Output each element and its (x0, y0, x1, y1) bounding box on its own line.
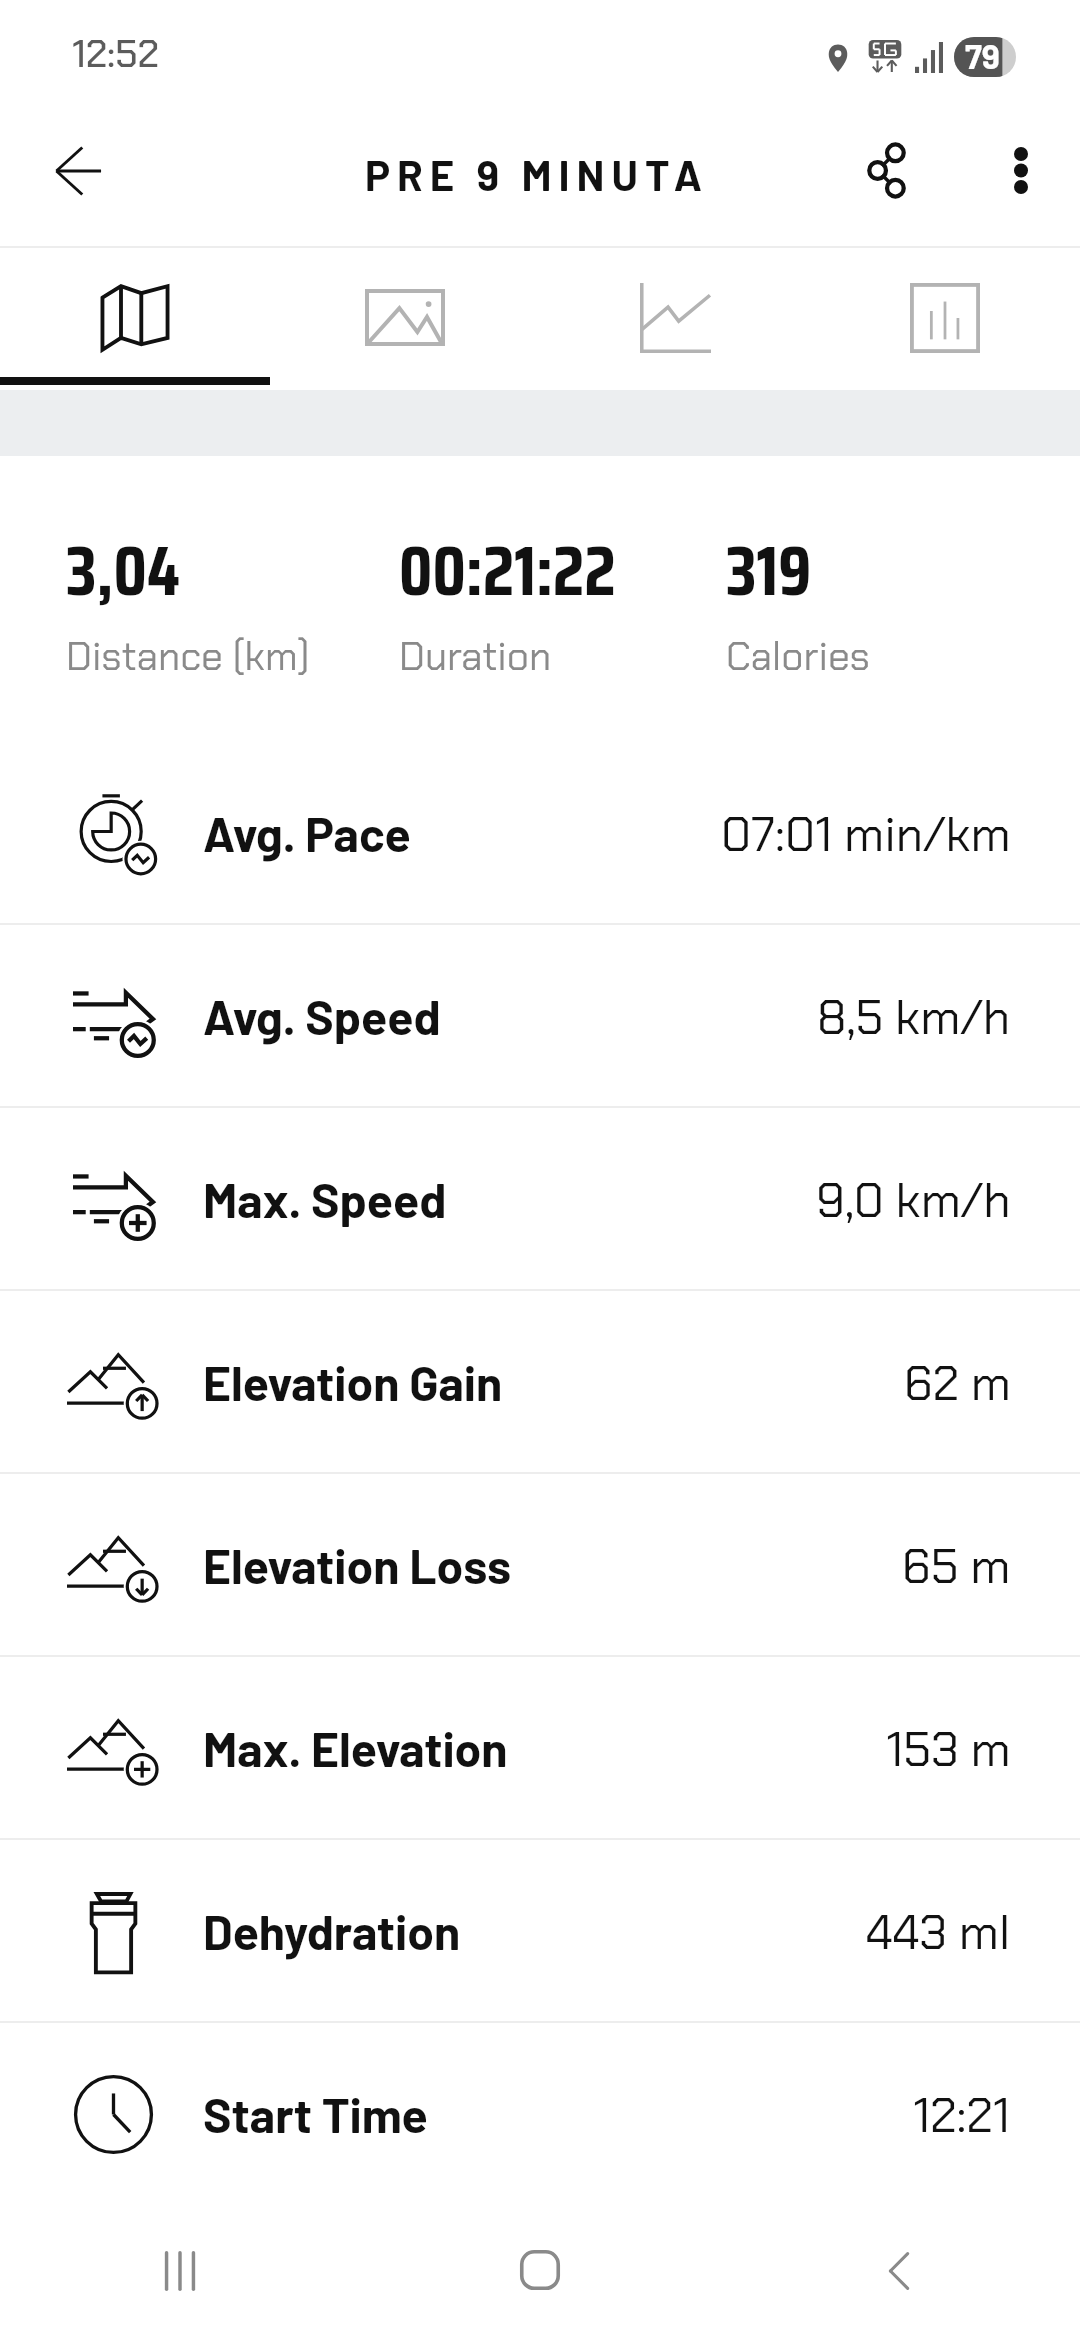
button[interactable]: Stats (810, 248, 1080, 385)
staticText: Avg. Pace (203, 804, 411, 862)
staticText: 07:01 min/km (721, 803, 1011, 865)
button[interactable]: Avg. Pace (0, 742, 1080, 925)
staticText: Avg. Speed (203, 987, 441, 1045)
staticText: 79 (965, 37, 1000, 75)
staticText: Elevation Gain (203, 1353, 503, 1411)
button[interactable]: Max. Speed (0, 1108, 1080, 1291)
staticText: Duration (399, 631, 552, 682)
staticText: 65 m (902, 1535, 1011, 1597)
button[interactable]: Elevation Gain (0, 1291, 1080, 1474)
staticText: 3,04 (66, 516, 180, 626)
staticText: 319 (726, 516, 812, 626)
staticText: Start Time (203, 2085, 428, 2143)
staticText: 153 m (886, 1718, 1011, 1780)
staticText: 62 m (904, 1352, 1011, 1414)
button[interactable]: More options (969, 118, 1073, 222)
button[interactable]: Back (720, 2206, 1080, 2340)
staticText: Elevation Loss (203, 1536, 512, 1594)
button[interactable]: Map (0, 248, 270, 385)
staticText: Max. Speed (203, 1170, 447, 1228)
staticText: 12:52 (72, 29, 159, 78)
staticText: Distance (km) (66, 631, 310, 682)
staticText: Max. Elevation (203, 1719, 508, 1777)
staticText: 443 ml (866, 1901, 1011, 1963)
button[interactable]: Share (834, 118, 938, 222)
button[interactable]: Graph (540, 248, 810, 385)
staticText: Dehydration (203, 1902, 461, 1960)
staticText: 12:21 (913, 2084, 1011, 2146)
button[interactable]: Max. Elevation (0, 1657, 1080, 1840)
button[interactable]: Home (360, 2206, 720, 2340)
staticText: PRE 9 MINUTA (365, 149, 709, 199)
button[interactable]: Back (26, 119, 130, 223)
staticText: Calories (726, 631, 870, 682)
button[interactable]: Avg. Speed (0, 925, 1080, 1108)
button[interactable]: Recents (0, 2206, 360, 2340)
button[interactable]: Start Time (0, 2023, 1080, 2206)
staticText: 9,0 km/h (816, 1169, 1011, 1231)
button[interactable]: Photos (270, 248, 540, 385)
button[interactable]: Dehydration (0, 1840, 1080, 2023)
button[interactable]: Elevation Loss (0, 1474, 1080, 1657)
staticText: 00:21:22 (399, 516, 616, 626)
staticText: 8,5 km/h (817, 986, 1011, 1048)
